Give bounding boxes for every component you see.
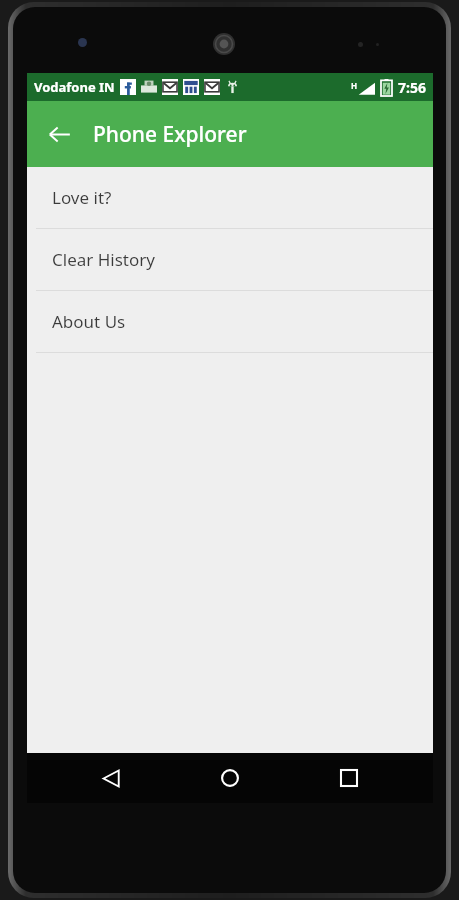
staticText: Love it? <box>52 186 112 209</box>
button[interactable]: Recent apps <box>314 753 384 803</box>
button[interactable]: Home <box>195 753 265 803</box>
staticText: Clear History <box>52 248 155 271</box>
button[interactable]: Back <box>37 112 81 156</box>
staticText: H <box>351 80 358 91</box>
button[interactable]: Clear History <box>27 229 433 290</box>
staticText: About Us <box>52 310 126 333</box>
button[interactable]: Love it? <box>27 167 433 228</box>
staticText: 7:56 <box>398 78 426 97</box>
staticText: Vodafone IN <box>34 78 115 96</box>
button[interactable]: Back <box>76 753 146 803</box>
button[interactable]: About Us <box>27 291 433 352</box>
staticText: Phone Explorer <box>93 120 247 149</box>
